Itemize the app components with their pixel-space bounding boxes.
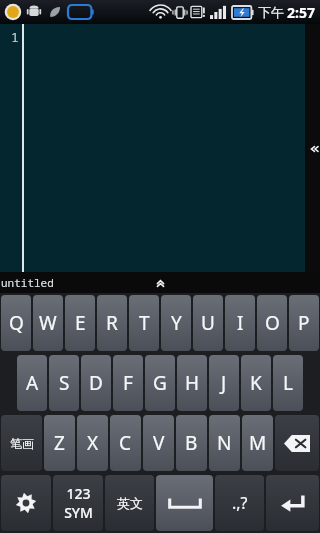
- staticText: Y: [171, 310, 182, 336]
- staticText: untitled: [1, 275, 54, 290]
- staticText: M: [249, 430, 267, 456]
- button[interactable]: I: [225, 295, 255, 351]
- button[interactable]: C: [110, 415, 141, 471]
- staticText: 下午: [258, 4, 284, 20]
- staticText: R: [106, 310, 118, 336]
- staticText: SYM: [64, 503, 93, 522]
- button[interactable]: J: [209, 355, 239, 411]
- staticText: X: [87, 430, 99, 456]
- button[interactable]: F: [113, 355, 143, 411]
- button[interactable]: X: [77, 415, 108, 471]
- button[interactable]: Z: [44, 415, 75, 471]
- button[interactable]: A: [17, 355, 47, 411]
- staticText: L: [283, 370, 293, 396]
- button[interactable]: M: [242, 415, 273, 471]
- staticText: H: [185, 370, 200, 396]
- staticText: N: [217, 430, 232, 456]
- staticText: D: [89, 370, 103, 396]
- staticText: I: [237, 310, 244, 336]
- button[interactable]: untitled: [0, 272, 320, 293]
- staticText: C: [119, 430, 132, 456]
- button[interactable]: N: [209, 415, 240, 471]
- staticText: 123: [66, 484, 91, 503]
- button[interactable]: Y: [161, 295, 191, 351]
- staticText: P: [298, 310, 310, 336]
- staticText: S: [59, 370, 70, 396]
- button[interactable]: R: [97, 295, 127, 351]
- staticText: 英文: [117, 495, 143, 511]
- staticText: Q: [9, 310, 24, 336]
- button[interactable]: Q: [1, 295, 31, 351]
- button[interactable]: .,?: [215, 475, 264, 531]
- staticText: Z: [54, 430, 65, 456]
- button[interactable]: 123: [53, 475, 103, 531]
- staticText: 2:57: [287, 3, 315, 22]
- button[interactable]: K: [241, 355, 271, 411]
- button[interactable]: O: [257, 295, 287, 351]
- staticText: U: [201, 310, 215, 336]
- button[interactable]: E: [65, 295, 95, 351]
- button[interactable]: B: [176, 415, 207, 471]
- staticText: B: [185, 430, 198, 456]
- button[interactable]: D: [81, 355, 111, 411]
- staticText: E: [75, 310, 86, 336]
- staticText: G: [153, 370, 167, 396]
- staticText: V: [153, 430, 165, 456]
- button[interactable]: U: [193, 295, 223, 351]
- button[interactable]: V: [143, 415, 174, 471]
- staticText: 笔画: [10, 436, 34, 451]
- button[interactable]: Show panel: [305, 24, 320, 272]
- staticText: T: [139, 310, 150, 336]
- button[interactable]: Enter: [266, 475, 319, 531]
- staticText: W: [39, 310, 57, 336]
- staticText: K: [250, 370, 262, 396]
- button[interactable]: 笔画: [1, 415, 42, 471]
- button[interactable]: 英文: [105, 475, 154, 531]
- button[interactable]: L: [273, 355, 303, 411]
- button[interactable]: Settings: [1, 475, 51, 531]
- button[interactable]: H: [177, 355, 207, 411]
- button[interactable]: G: [145, 355, 175, 411]
- staticText: 1: [11, 28, 19, 46]
- staticText: .,?: [232, 492, 248, 514]
- staticText: A: [26, 370, 39, 396]
- staticText: J: [221, 370, 227, 396]
- staticText: O: [265, 310, 280, 336]
- button[interactable]: P: [289, 295, 319, 351]
- staticText: F: [123, 370, 133, 396]
- button[interactable]: T: [129, 295, 159, 351]
- button[interactable]: Backspace: [275, 415, 319, 471]
- button[interactable]: Space: [156, 475, 213, 531]
- button[interactable]: W: [33, 295, 63, 351]
- button[interactable]: S: [49, 355, 79, 411]
